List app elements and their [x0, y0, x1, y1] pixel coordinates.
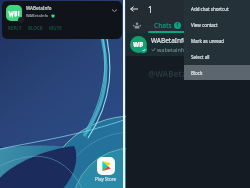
button[interactable]: WB: [126, 33, 250, 56]
staticText: @WABetaInfo: [148, 68, 203, 79]
button[interactable]: View contact: [184, 17, 250, 33]
button[interactable]: MUTE: [46, 24, 65, 32]
staticText: View contact: [191, 22, 218, 28]
staticText: Block: [191, 70, 203, 76]
staticText: Chats: [154, 21, 172, 30]
button[interactable]: Add chat shortcut: [184, 1, 250, 17]
button[interactable]: WABetaInfo: [2, 1, 122, 39]
staticText: WABetaInfo: [151, 36, 188, 45]
staticText: Add chat shortcut: [191, 6, 229, 12]
staticText: WB: [133, 41, 144, 49]
button[interactable]: Block: [184, 65, 250, 80]
button[interactable]: REPLY: [5, 24, 25, 32]
staticText: Mark as unread: [191, 38, 225, 44]
button[interactable]: Select all: [184, 49, 250, 65]
staticText: WABetaInfo: [26, 5, 52, 11]
staticText: REPLY: [8, 25, 22, 31]
staticText: Select all: [191, 54, 210, 60]
button[interactable]: Chats: [148, 18, 186, 33]
staticText: WABetaInfo: [26, 13, 49, 18]
staticText: 1: [148, 4, 153, 15]
staticText: Play Store: [95, 176, 116, 182]
staticText: 1: [176, 22, 179, 29]
staticText: wabetainfo.com: [157, 46, 199, 53]
staticText: BLOCK: [28, 25, 43, 31]
staticText: MUTE: [49, 25, 62, 31]
button[interactable]: Communities: [126, 18, 148, 33]
button[interactable]: Expand notification: [109, 5, 120, 16]
button[interactable]: BLOCK: [25, 24, 46, 32]
button[interactable]: Back: [126, 1, 142, 17]
button[interactable]: Mark as unread: [184, 33, 250, 49]
button[interactable]: Mute: [226, 1, 242, 17]
button[interactable]: Play Store: [97, 157, 115, 175]
